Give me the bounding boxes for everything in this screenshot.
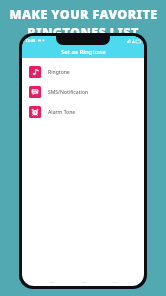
- staticText: RINGTONES LIST: [27, 24, 139, 41]
- button[interactable]: Alarm Tone: [22, 102, 144, 122]
- button[interactable]: SMS Notification: [22, 82, 144, 102]
- staticText: Alarm Tone: [48, 109, 76, 116]
- button[interactable]: Ringtone: [22, 62, 144, 82]
- staticText: 12:48: [25, 38, 36, 43]
- staticText: MAKE YOUR FAVORITE: [9, 6, 158, 23]
- staticText: Set as Ringtone: [61, 48, 106, 56]
- other: SMS Notification: [29, 86, 41, 98]
- other: Alarm Tone: [29, 106, 41, 118]
- staticText: Ringtone: [48, 69, 70, 76]
- staticText: SMS/Notification: [48, 89, 89, 96]
- other: Ringtone: [29, 66, 41, 78]
